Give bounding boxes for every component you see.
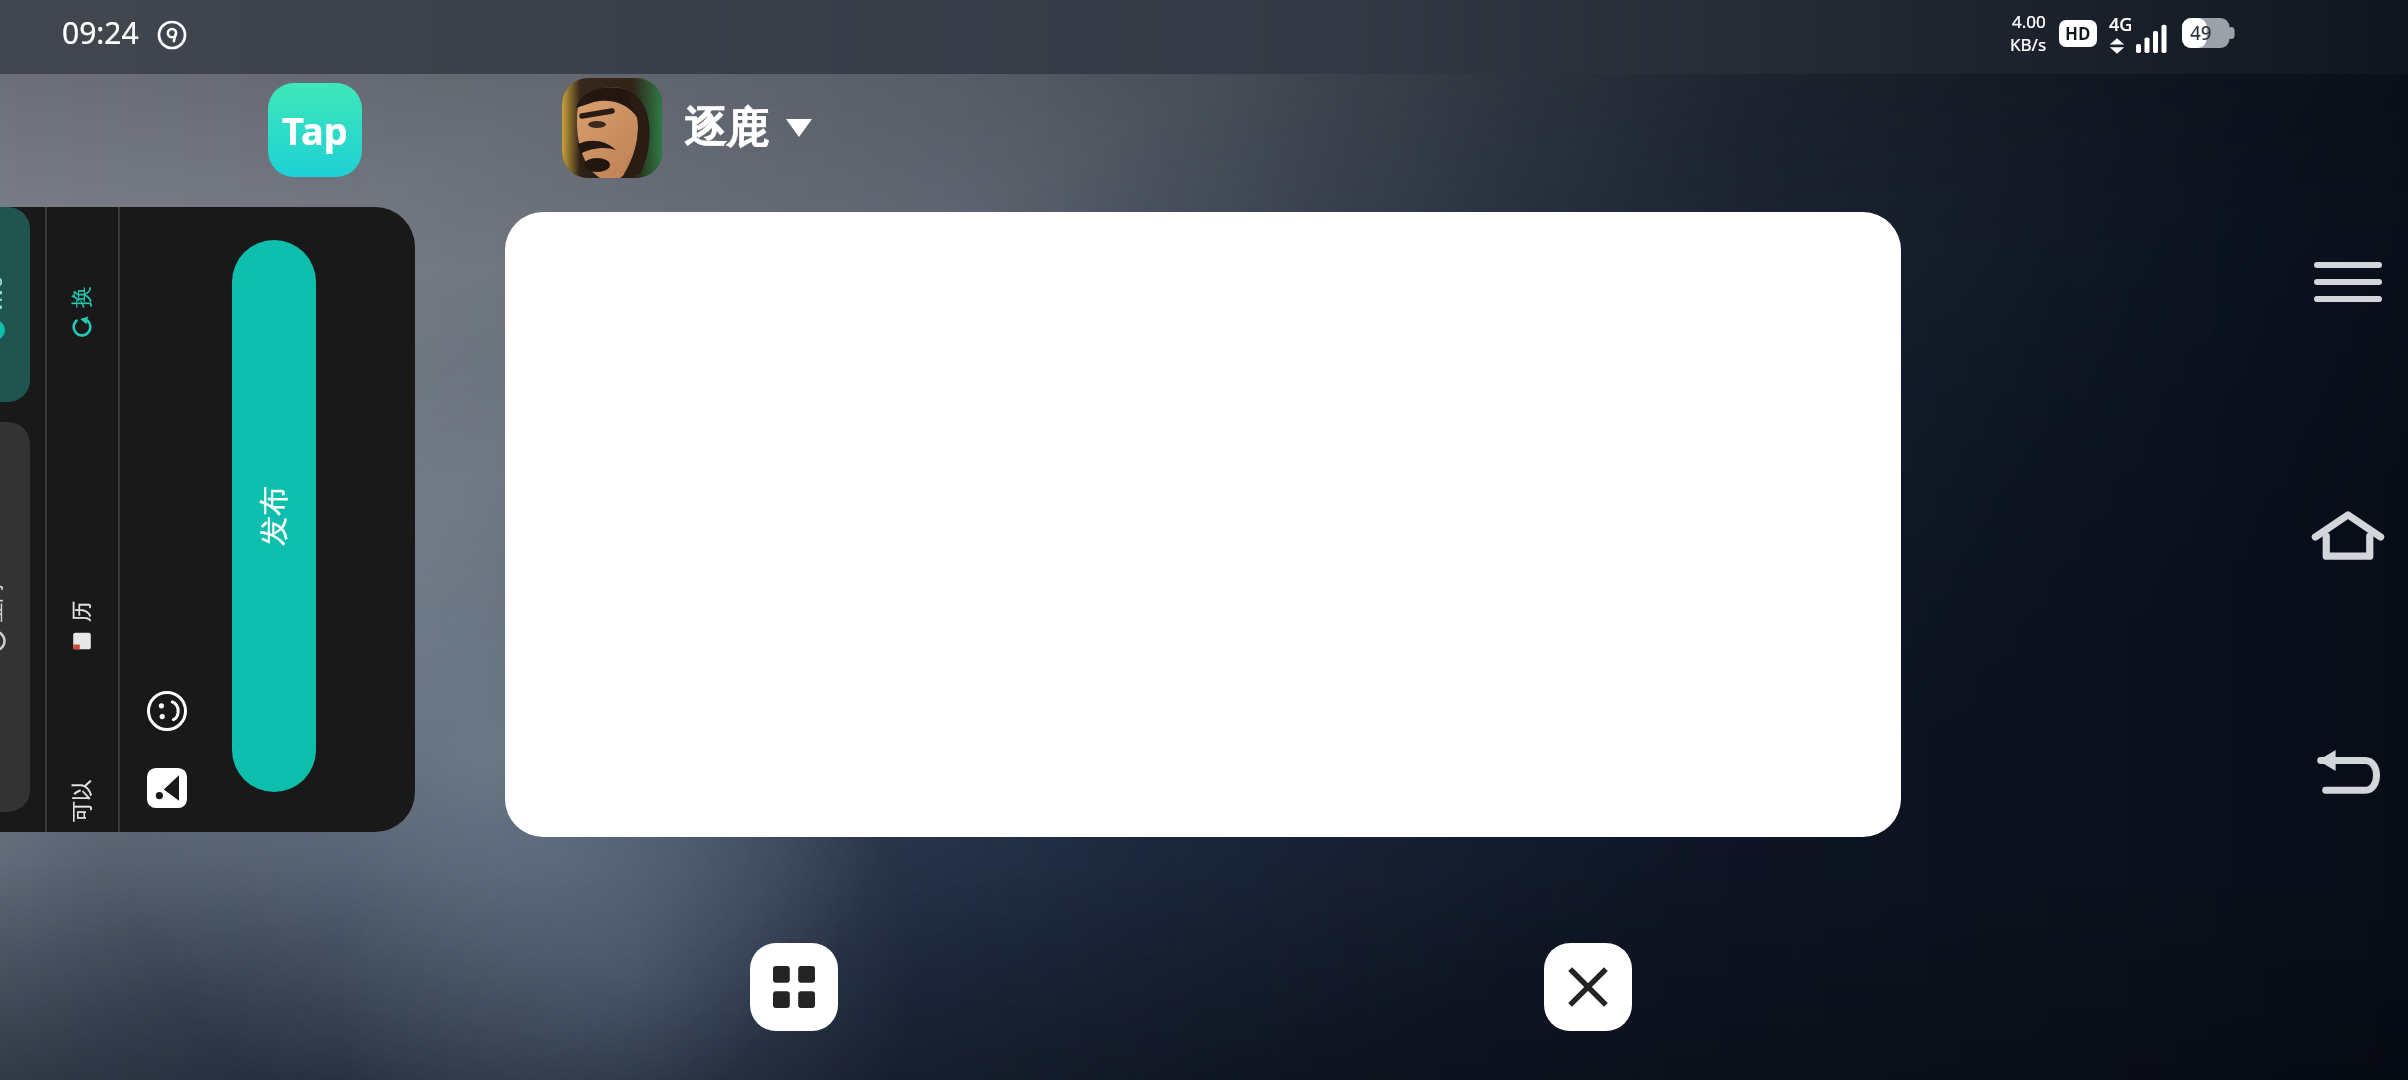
button[interactable]: 历史/演义还原度 — [52, 507, 112, 737]
button[interactable]: Apps — [750, 943, 838, 1031]
button[interactable]: 换一换 — [52, 213, 112, 403]
button[interactable]: vivo iQOO Z8x — [0, 207, 30, 402]
staticText: 业内游戏的区域计 — [0, 582, 7, 622]
staticText: Tap — [282, 104, 348, 156]
staticText: 逐鹿 — [684, 102, 768, 155]
staticText: KB/s — [2010, 33, 2047, 56]
staticText: 发布为玩过评价 — [255, 474, 293, 558]
staticText: 4.00 — [2012, 10, 2046, 33]
button[interactable]: Close — [1544, 943, 1632, 1031]
staticText: 历史/演义还原度 — [69, 592, 95, 622]
button[interactable]: Recents — [2288, 222, 2408, 342]
button[interactable] — [505, 212, 1901, 837]
button[interactable]: TapTap — [268, 83, 362, 177]
button[interactable]: Back — [2288, 712, 2408, 832]
button[interactable]: Home — [2288, 476, 2408, 596]
staticText: 09:24 — [62, 12, 139, 53]
button[interactable]: 可以聊聊 — [52, 747, 112, 832]
staticText: vivo iQOO Z8x — [0, 270, 8, 312]
staticText: 可以聊聊 — [69, 762, 95, 822]
staticText: HD — [2065, 22, 2091, 45]
staticText: 4G — [2109, 12, 2133, 37]
button[interactable]: 逐鹿 — [562, 78, 812, 178]
button[interactable]: 业内游戏的区域计 — [0, 422, 30, 812]
button[interactable]: Emoji — [136, 680, 198, 742]
button[interactable]: Add image — [136, 757, 198, 819]
button[interactable]: 发布为玩过评价 — [232, 240, 316, 792]
staticText: 49 — [2190, 20, 2212, 46]
staticText: 换一换 — [68, 278, 96, 308]
